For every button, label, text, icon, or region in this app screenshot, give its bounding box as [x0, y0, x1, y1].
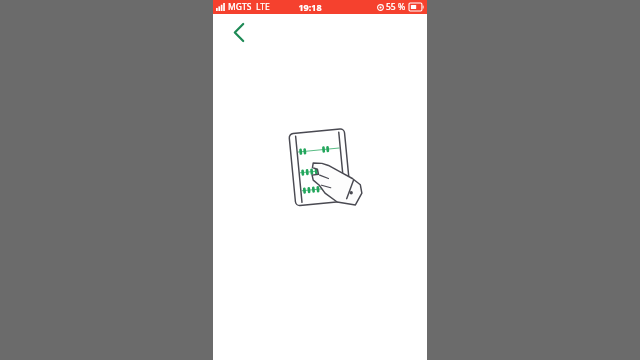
staticText: LTE [256, 1, 270, 13]
staticText: 19:18 [298, 1, 322, 13]
staticText: 55 % [386, 1, 406, 13]
staticText: MGTS [228, 1, 252, 13]
button[interactable]: Back [221, 14, 257, 50]
